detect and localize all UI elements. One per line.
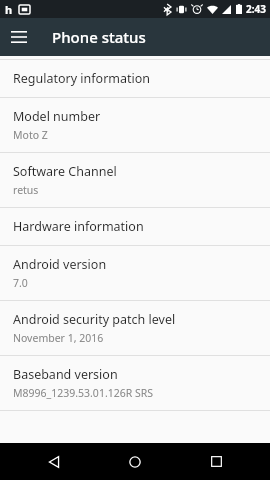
staticText: Phone status bbox=[52, 27, 146, 47]
button[interactable]: Open navigation drawer bbox=[0, 18, 38, 56]
button[interactable]: Recent apps bbox=[189, 443, 243, 480]
button[interactable]: Regulatory information bbox=[0, 60, 270, 97]
button[interactable]: Back bbox=[27, 443, 81, 480]
staticText: Software Channel bbox=[13, 163, 117, 180]
button[interactable]: Baseband version bbox=[0, 356, 270, 410]
staticText: Model number bbox=[13, 108, 101, 125]
staticText: Hardware information bbox=[13, 218, 144, 235]
staticText: Regulatory information bbox=[13, 70, 151, 87]
button[interactable]: Home bbox=[108, 443, 162, 480]
staticText: November 1, 2016 bbox=[13, 331, 104, 345]
staticText: retus bbox=[13, 183, 39, 197]
button[interactable]: Android version bbox=[0, 246, 270, 300]
button[interactable]: Model number bbox=[0, 98, 270, 152]
button[interactable]: Android security patch level bbox=[0, 301, 270, 355]
button[interactable]: Software Channel bbox=[0, 153, 270, 207]
staticText: 7.0 bbox=[13, 276, 28, 290]
staticText: 2:43 bbox=[246, 2, 266, 16]
staticText: Moto Z bbox=[13, 128, 48, 142]
staticText: Android version bbox=[13, 256, 107, 273]
button[interactable]: Hardware information bbox=[0, 208, 270, 245]
staticText: h bbox=[5, 2, 13, 17]
staticText: Android security patch level bbox=[13, 311, 176, 328]
staticText: M8996_1239.53.01.126R SRS bbox=[13, 386, 154, 400]
staticText: Baseband version bbox=[13, 366, 118, 383]
